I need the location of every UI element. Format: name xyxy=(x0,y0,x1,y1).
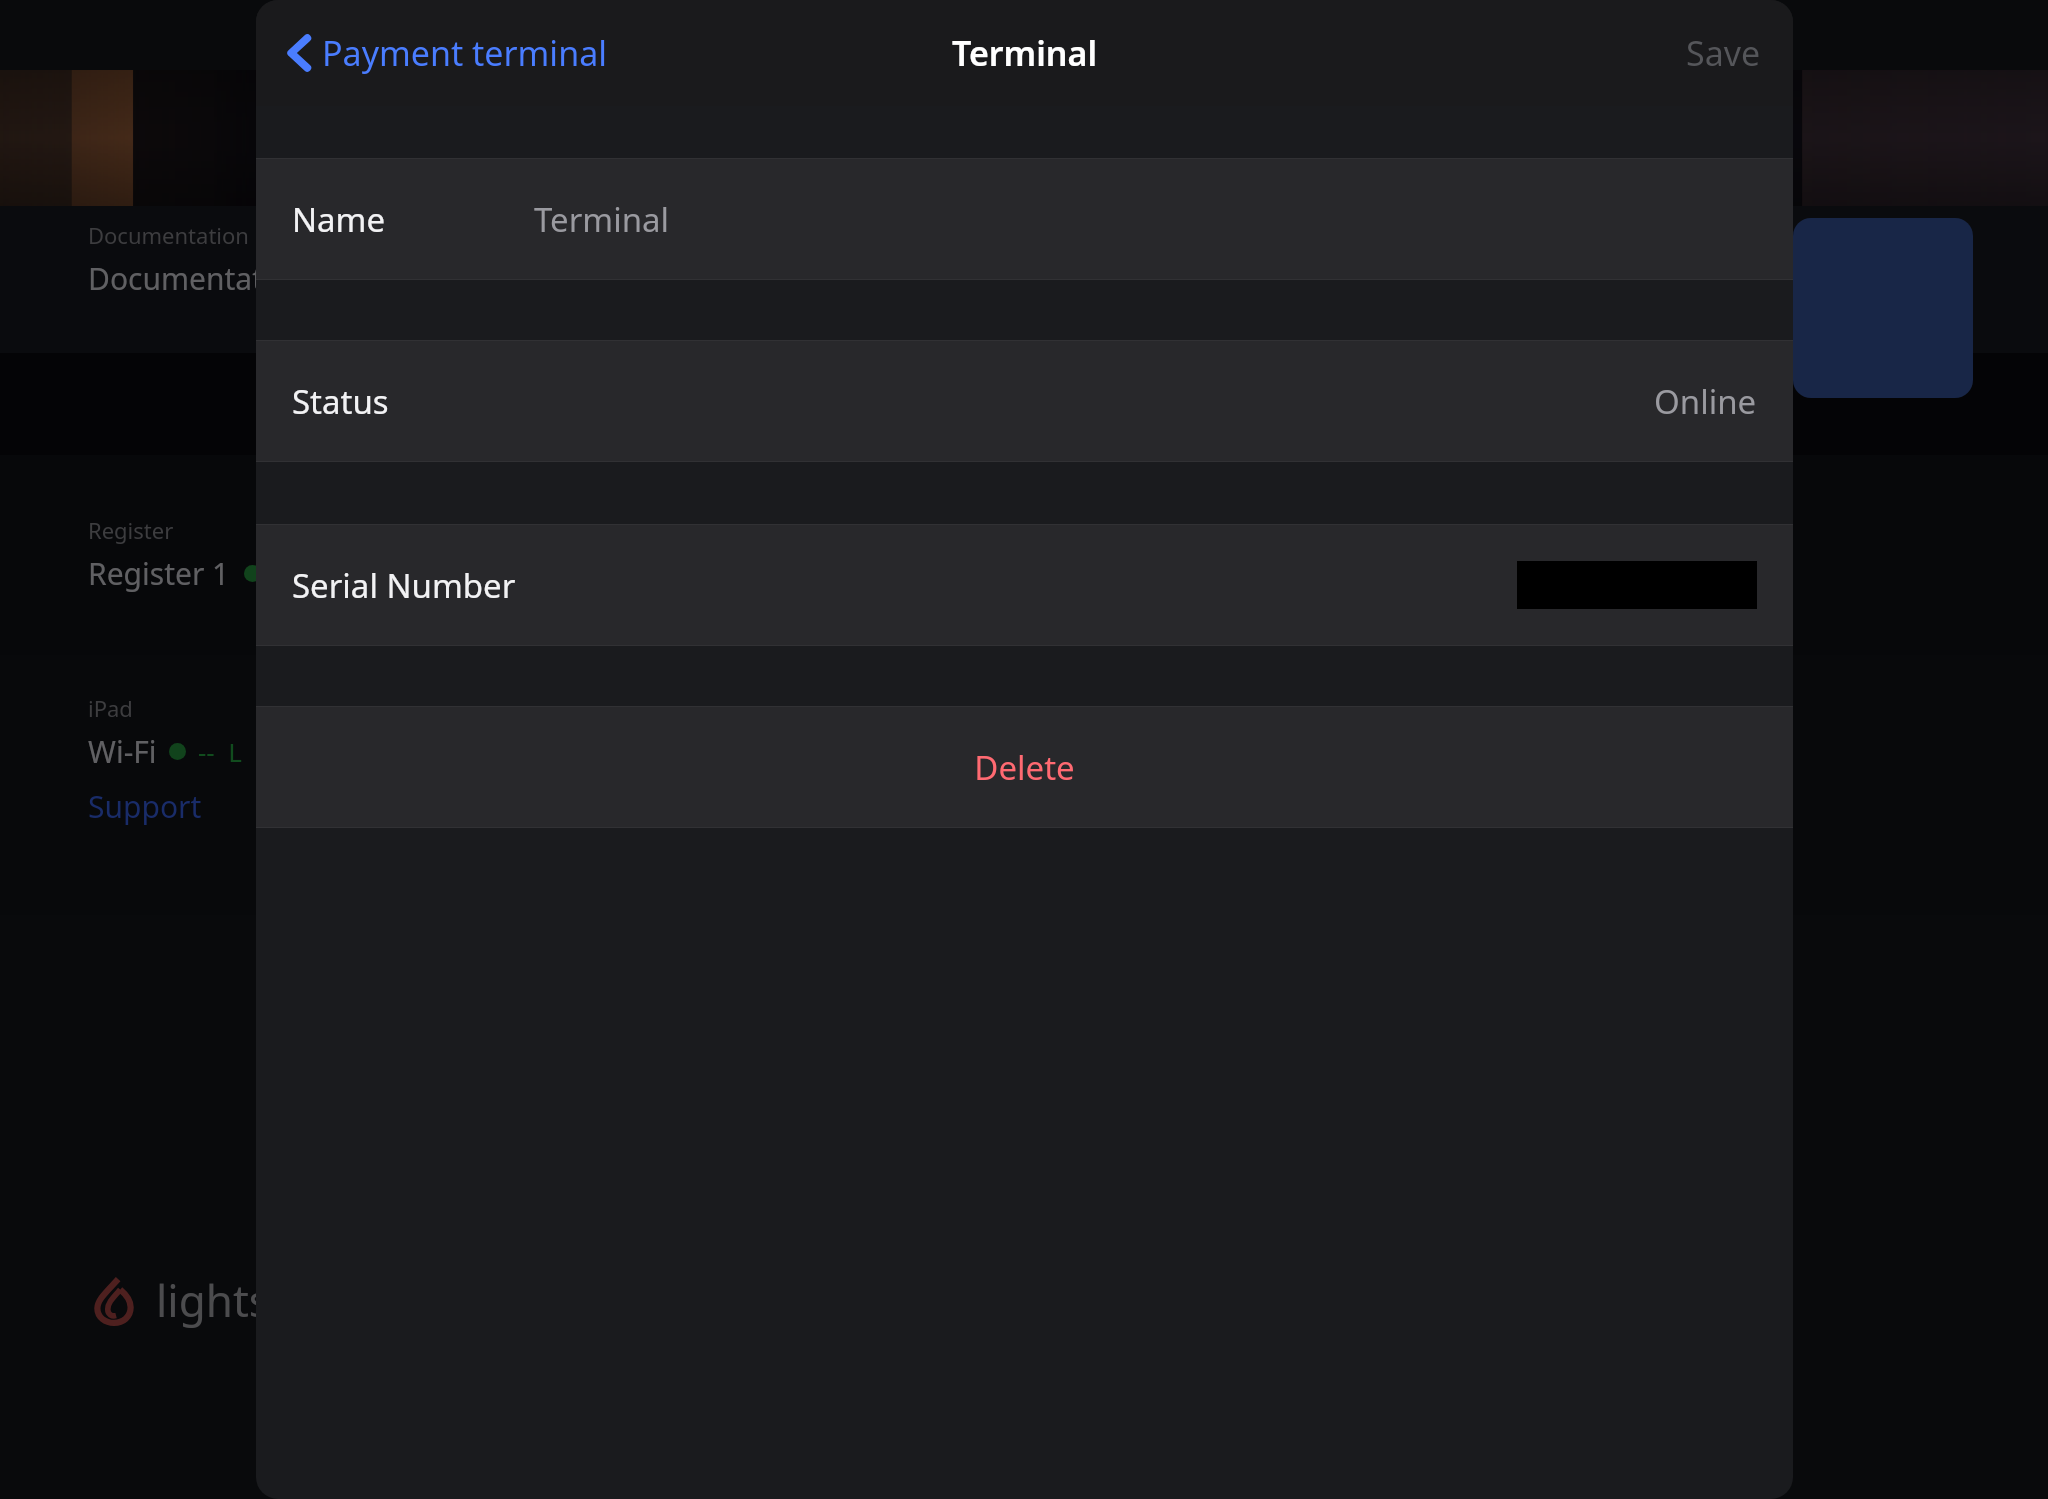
button[interactable]: Serial Number xyxy=(256,524,1793,646)
staticText: Terminal xyxy=(534,197,670,242)
staticText: Register 1 xyxy=(88,553,230,594)
staticText: Status xyxy=(292,379,389,424)
button[interactable]: Delete xyxy=(256,706,1793,828)
staticText: Documentation xyxy=(88,258,308,299)
staticText: Register xyxy=(88,515,174,545)
staticText: Save xyxy=(1686,30,1761,76)
staticText: Support xyxy=(88,786,202,827)
staticText: Name xyxy=(292,197,386,242)
button[interactable]: Status xyxy=(256,340,1793,462)
staticText: Serial Number xyxy=(292,563,516,608)
button[interactable]: Support xyxy=(88,786,202,827)
staticText: Delete xyxy=(974,745,1075,790)
staticText: Online xyxy=(1654,379,1757,424)
button[interactable]: Action xyxy=(1793,218,1973,398)
staticText: Wi-Fi xyxy=(88,731,157,772)
staticText: iPad xyxy=(88,693,133,723)
button[interactable]: Save xyxy=(1676,22,1771,84)
button[interactable]: Name xyxy=(256,158,1793,280)
staticText: Terminal xyxy=(952,30,1098,76)
staticText: Documentation xyxy=(88,220,249,250)
button[interactable]: Payment terminal xyxy=(278,22,615,84)
staticText: Payment terminal xyxy=(322,30,607,76)
staticText: lightspeed xyxy=(156,1270,374,1330)
staticText: -- L xyxy=(198,734,242,769)
